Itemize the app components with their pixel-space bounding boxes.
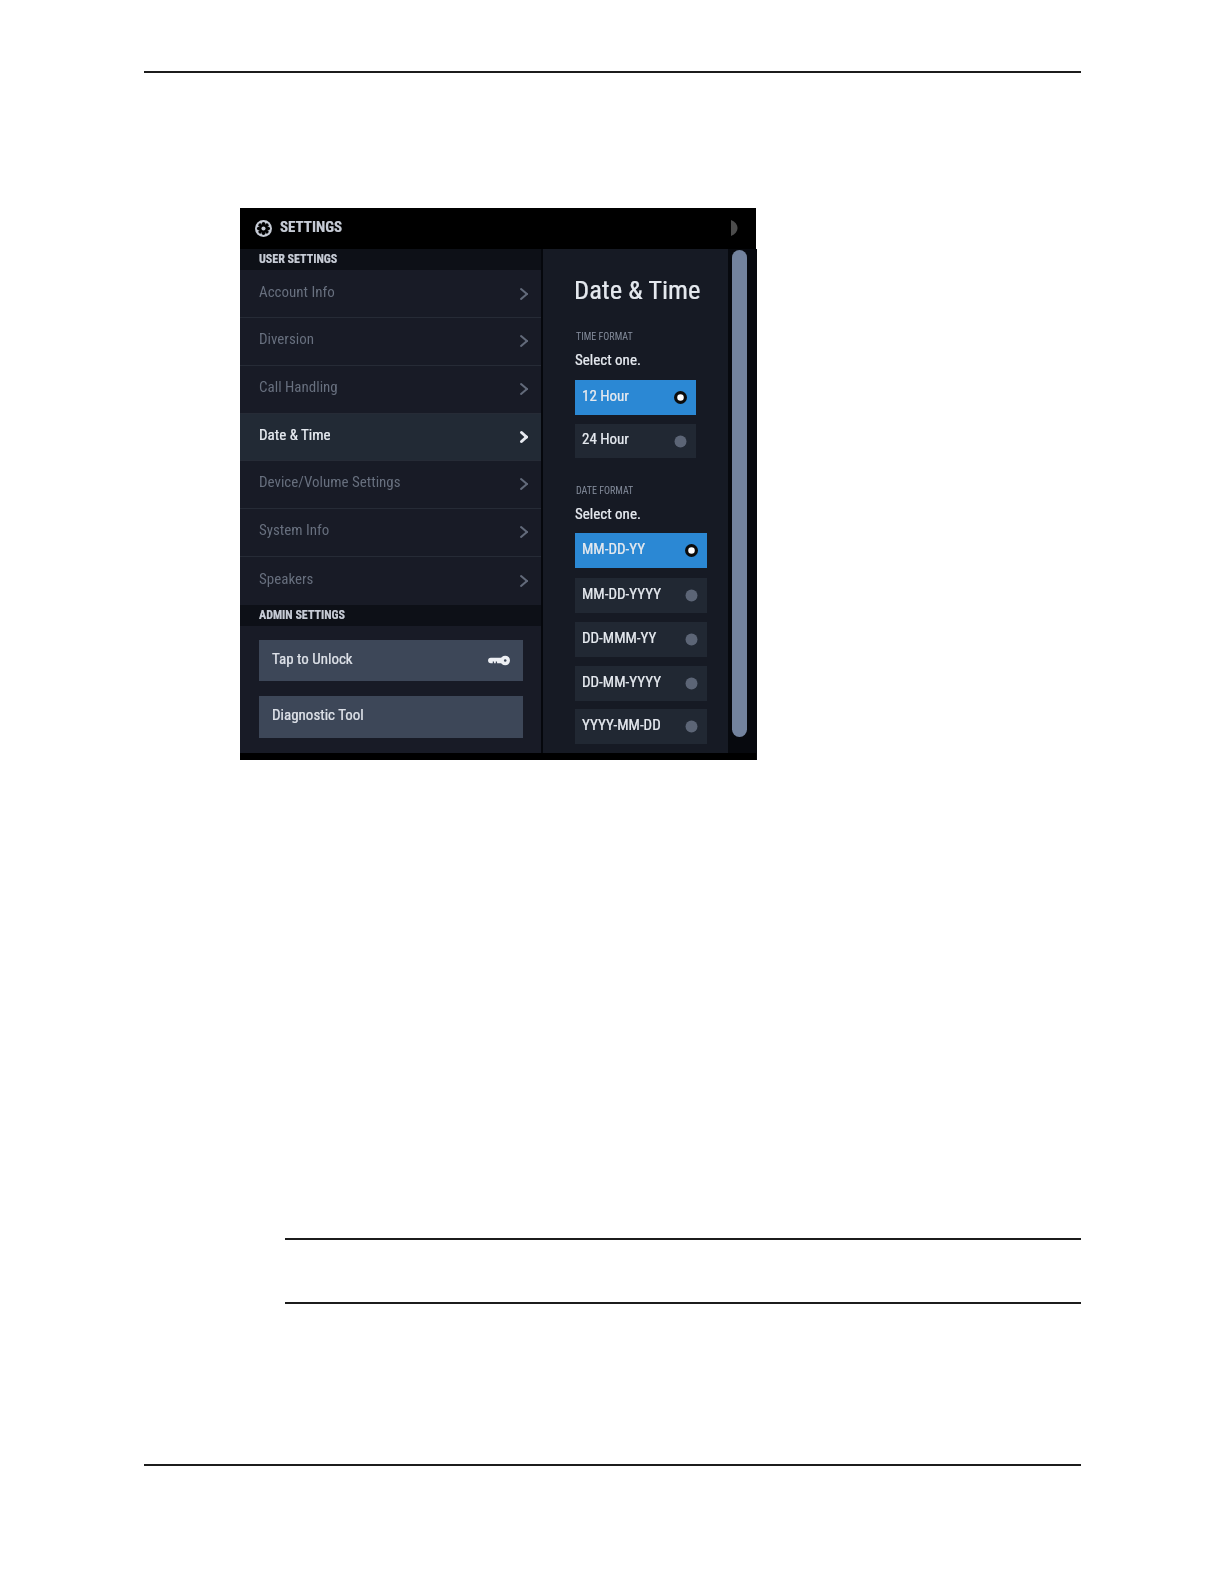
staticText: 24 Hour [582,430,629,448]
button[interactable]: Speakers [240,556,541,605]
staticText: Call Handling [259,378,338,396]
staticText: Tap to Unlock [272,650,353,668]
button[interactable]: System Info [240,508,541,555]
staticText: Diversion [259,330,315,348]
button[interactable]: 12 Hour [575,380,696,415]
button[interactable]: Tap to Unlock [259,640,523,681]
staticText: MM-DD-YYYY [582,585,662,603]
staticText: TIME FORMAT [576,331,633,343]
button[interactable]: Account Info [240,270,541,318]
staticText: Speakers [259,570,314,588]
staticText: Device/Volume Settings [259,473,401,491]
other: Unlock [488,655,510,666]
button[interactable]: YYYY-MM-DD [575,709,707,744]
staticText: Diagnostic Tool [272,706,364,724]
button[interactable]: Diversion [240,317,541,365]
button[interactable]: DD-MMM-YY [575,622,707,657]
staticText: Date & Time [259,426,331,444]
button[interactable]: 24 Hour [575,424,696,458]
button[interactable]: MM-DD-YYYY [575,578,707,613]
staticText: Select one. [575,351,641,369]
staticText: System Info [259,521,330,539]
staticText: DD-MM-YYYY [582,673,662,691]
staticText: DATE FORMAT [576,485,634,497]
staticText: ADMIN SETTINGS [259,608,346,622]
staticText: 12 Hour [582,387,629,405]
button[interactable]: Date & Time [240,413,541,461]
staticText: SETTINGS [280,218,343,236]
staticText: USER SETTINGS [259,252,338,266]
staticText: MM-DD-YY [582,540,646,558]
button[interactable]: MM-DD-YY [575,533,707,568]
staticText: Date & Time [574,274,701,305]
button[interactable]: DD-MM-YYYY [575,666,707,701]
button[interactable]: Expand panel [723,214,743,242]
button[interactable]: Diagnostic Tool [259,696,523,738]
staticText: DD-MMM-YY [582,629,657,647]
button[interactable]: Call Handling [240,365,541,412]
staticText: Account Info [259,283,335,301]
button[interactable]: Device/Volume Settings [240,460,541,508]
staticText: Select one. [575,505,641,523]
staticText: YYYY-MM-DD [582,716,661,734]
